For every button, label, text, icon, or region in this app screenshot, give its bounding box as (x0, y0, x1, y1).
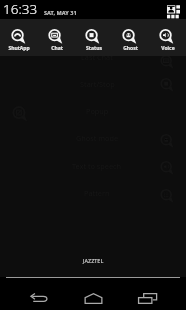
staticText: Ghost (123, 45, 138, 52)
button[interactable]: Status (75, 19, 112, 56)
button[interactable]: Recents (131, 284, 163, 310)
staticText: SAT, MAY 31 (44, 9, 77, 17)
staticText: JAZZTEL (83, 257, 104, 264)
button[interactable]: ShutApp (0, 19, 38, 56)
button[interactable]: Voice (149, 19, 186, 56)
staticText: ShutApp (8, 45, 30, 52)
staticText: 16:33 (3, 0, 38, 18)
staticText: Chat (51, 45, 63, 52)
button[interactable]: Back (23, 284, 55, 310)
staticText: Voice (161, 45, 175, 52)
staticText: Status (86, 45, 102, 52)
button[interactable]: Chat (38, 19, 75, 56)
button[interactable]: Ghost (112, 19, 149, 56)
staticText: Last Chat (81, 52, 113, 62)
button[interactable]: Home (77, 284, 109, 310)
